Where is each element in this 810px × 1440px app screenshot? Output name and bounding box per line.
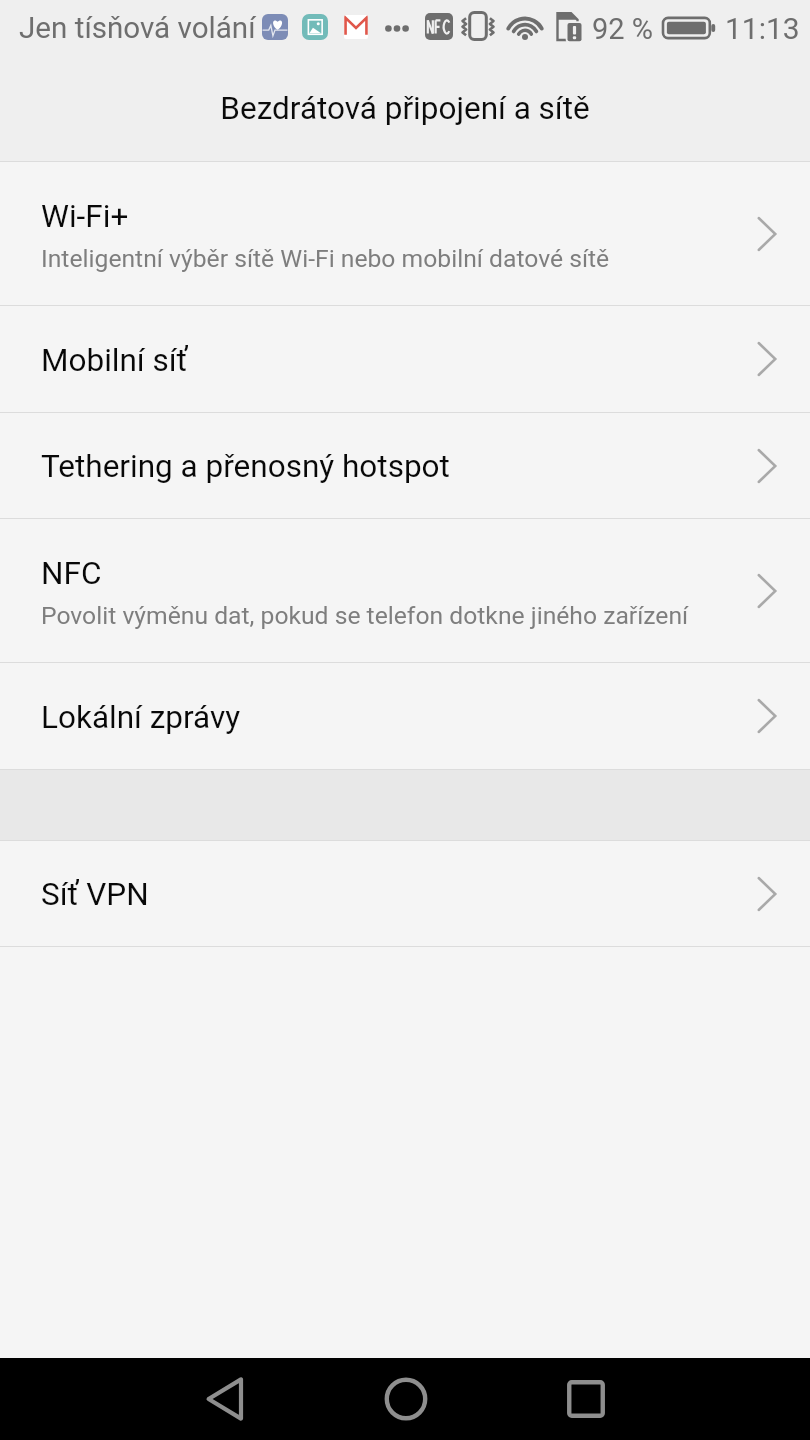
staticText: Jen tísňová volání [19, 11, 256, 46]
button[interactable]: Lokální zprávy [0, 663, 810, 769]
staticText: NFC [41, 555, 102, 592]
staticText: Inteligentní výběr sítě Wi-Fi nebo mobil… [41, 244, 610, 273]
staticText: 92 % [592, 12, 654, 46]
staticText: Mobilní síť [41, 342, 188, 379]
button[interactable]: Back [179, 1358, 270, 1440]
button[interactable]: Recents [540, 1358, 631, 1440]
staticText: Povolit výměnu dat, pokud se telefon dot… [41, 601, 689, 630]
staticText: Síť VPN [41, 876, 149, 913]
staticText: 11:13 [725, 11, 800, 46]
button[interactable]: Home [360, 1358, 451, 1440]
button[interactable]: Tethering a přenosný hotspot [0, 413, 810, 518]
button[interactable]: NFC [0, 519, 810, 662]
staticText: Lokální zprávy [41, 699, 241, 736]
staticText: Tethering a přenosný hotspot [41, 448, 450, 485]
staticText: Bezdrátová připojení a sítě [220, 90, 590, 127]
button[interactable]: Mobilní síť [0, 306, 810, 412]
staticText: Wi-Fi+ [41, 198, 129, 235]
button[interactable]: Síť VPN [0, 841, 810, 946]
button[interactable]: Wi-Fi+ [0, 162, 810, 305]
